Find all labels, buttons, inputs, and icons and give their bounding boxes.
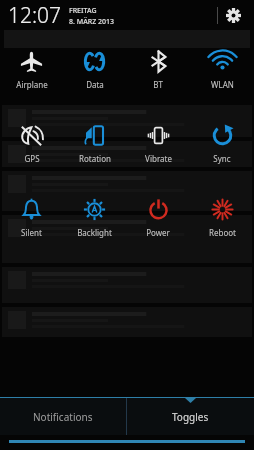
staticText: 8. MÄRZ 2013	[69, 17, 115, 27]
button[interactable]: Rotation	[63, 122, 126, 166]
button[interactable]: Toggles	[127, 398, 254, 435]
button[interactable]: Reboot	[190, 196, 254, 240]
staticText: Silent	[21, 227, 42, 238]
button[interactable]: Notifications	[0, 398, 126, 435]
staticText: FREITAG	[69, 6, 97, 16]
staticText: 12:07	[8, 1, 62, 30]
staticText: BT	[153, 79, 163, 90]
staticText: GPS	[24, 153, 40, 164]
button[interactable]: Sync	[190, 122, 254, 166]
staticText: Sync	[213, 153, 231, 164]
staticText: Backlight	[77, 227, 112, 238]
staticText: Toggles	[172, 410, 209, 424]
staticText: Power	[146, 227, 170, 238]
button[interactable]: Silent	[0, 196, 63, 240]
button[interactable]: WLAN	[190, 48, 254, 92]
button[interactable]: BT	[126, 48, 190, 92]
staticText: Reboot	[209, 227, 236, 238]
button[interactable]: Backlight	[63, 196, 126, 240]
staticText: Data	[86, 79, 104, 90]
button[interactable]: GPS	[0, 122, 63, 166]
button[interactable]: Airplane	[0, 48, 63, 92]
staticText: Rotation	[79, 153, 111, 164]
button[interactable]: Settings	[218, 0, 248, 30]
button[interactable]: Vibrate	[126, 122, 190, 166]
button[interactable]: Data	[63, 48, 126, 92]
staticText: Notifications	[33, 410, 93, 424]
button[interactable]: Power	[126, 196, 190, 240]
staticText: Vibrate	[145, 153, 172, 164]
staticText: WLAN	[211, 79, 234, 90]
staticText: Airplane	[16, 79, 48, 90]
